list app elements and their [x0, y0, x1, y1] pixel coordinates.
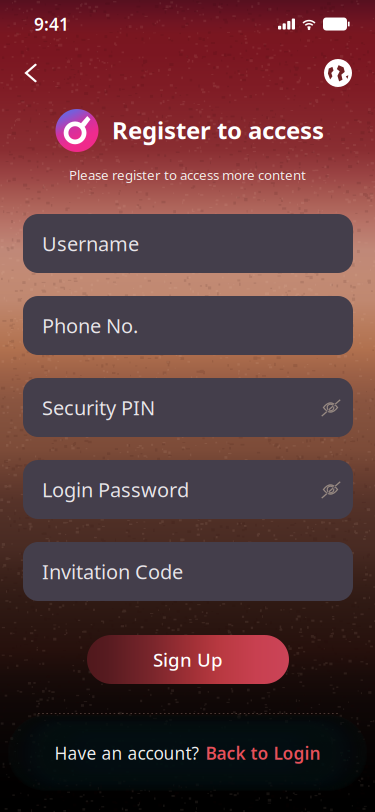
staticText: Security PIN: [42, 394, 155, 421]
staticText: Please register to access more content: [69, 166, 306, 184]
button[interactable]: Back: [0, 50, 53, 95]
button[interactable]: Sign Up: [87, 635, 289, 684]
button[interactable]: Username: [23, 214, 353, 273]
staticText: 9:41: [34, 12, 69, 35]
staticText: Invitation Code: [42, 558, 183, 585]
button[interactable]: Security PIN: [23, 378, 353, 437]
button[interactable]: Login Password: [23, 460, 353, 519]
staticText: Username: [42, 230, 139, 257]
staticText: Sign Up: [153, 647, 223, 672]
button[interactable]: Back to Login: [205, 741, 320, 764]
staticText: Phone No.: [42, 312, 138, 339]
staticText: Back to Login: [205, 741, 320, 764]
staticText: Register to access: [112, 114, 324, 146]
button[interactable]: Invitation Code: [23, 542, 353, 601]
staticText: Have an account?: [54, 741, 199, 764]
staticText: Login Password: [42, 476, 189, 503]
button[interactable]: Phone No.: [23, 296, 353, 355]
button[interactable]: Change language: [308, 50, 375, 96]
